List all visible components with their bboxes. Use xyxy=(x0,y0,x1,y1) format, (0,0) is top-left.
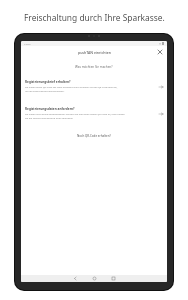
staticText: Sie die Online-Freischaltung Ihrer Spark… xyxy=(25,117,74,120)
button[interactable]: Startbildschirm xyxy=(89,275,99,282)
other: Weiter xyxy=(158,111,164,117)
staticText: Registrierungsbrief erhalten? xyxy=(25,80,71,84)
other: Weiter xyxy=(158,84,164,90)
staticText: Sie haben einen QR-Code per Brief erhalt… xyxy=(25,86,118,89)
staticText: pushTAN einrichten xyxy=(78,50,111,55)
staticText: Noch QR-Code erhalten? xyxy=(77,134,111,138)
staticText: Freischaltung durch Ihre Sparkasse. xyxy=(24,12,165,23)
staticText: 12:04 xyxy=(24,42,31,45)
button[interactable]: Registrierungsdaten anfordern? xyxy=(21,103,167,125)
staticText: Sie haben noch keine Zugangsdaten? Forde… xyxy=(25,113,125,116)
button[interactable]: Schließen xyxy=(156,48,164,56)
staticText: Was möchten Sie machen? xyxy=(75,65,113,69)
button[interactable]: Zurück xyxy=(70,275,80,282)
button[interactable]: Noch QR-Code erhalten? xyxy=(21,134,167,138)
button[interactable]: Übersicht xyxy=(108,275,118,282)
button[interactable]: Registrierungsbrief erhalten? xyxy=(21,76,167,98)
staticText: Registrierungsdaten anfordern? xyxy=(25,107,75,111)
staticText: um die Freischaltung abzuschließen. xyxy=(25,90,65,93)
